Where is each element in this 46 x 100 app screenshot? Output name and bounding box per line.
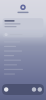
button[interactable]: Send bbox=[38, 87, 42, 92]
button[interactable]: Dictate bbox=[32, 87, 36, 92]
button[interactable]: Add attachment bbox=[4, 87, 8, 92]
